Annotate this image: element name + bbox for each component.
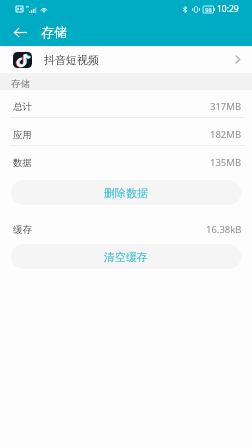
staticText: 总计 (13, 101, 32, 113)
staticText: 缓存 (13, 224, 32, 236)
button[interactable]: 清空缓存 (11, 244, 241, 269)
button[interactable]: Back (0, 18, 40, 46)
staticText: 数据 (13, 157, 32, 169)
button[interactable]: 数据 (0, 146, 252, 174)
button[interactable]: 缓存 (0, 213, 252, 241)
staticText: 清空缓存 (104, 250, 148, 264)
staticText: 应用 (13, 129, 32, 141)
button[interactable]: 总计 (0, 90, 252, 118)
staticText: 存储 (41, 24, 67, 40)
button[interactable]: 抖音短视频 (0, 46, 252, 73)
staticText: 98 (205, 6, 212, 13)
staticText: 10:29 (217, 3, 239, 15)
button[interactable]: 删除数据 (11, 180, 241, 205)
button[interactable]: 应用 (0, 118, 252, 146)
staticText: 抖音短视频 (44, 53, 99, 67)
staticText: 16.38kB (206, 223, 242, 236)
staticText: 182MB (210, 128, 242, 141)
staticText: 135MB (210, 156, 242, 169)
staticText: 删除数据 (104, 186, 148, 200)
staticText: 存储 (11, 78, 30, 90)
staticText: 317MB (210, 100, 242, 113)
